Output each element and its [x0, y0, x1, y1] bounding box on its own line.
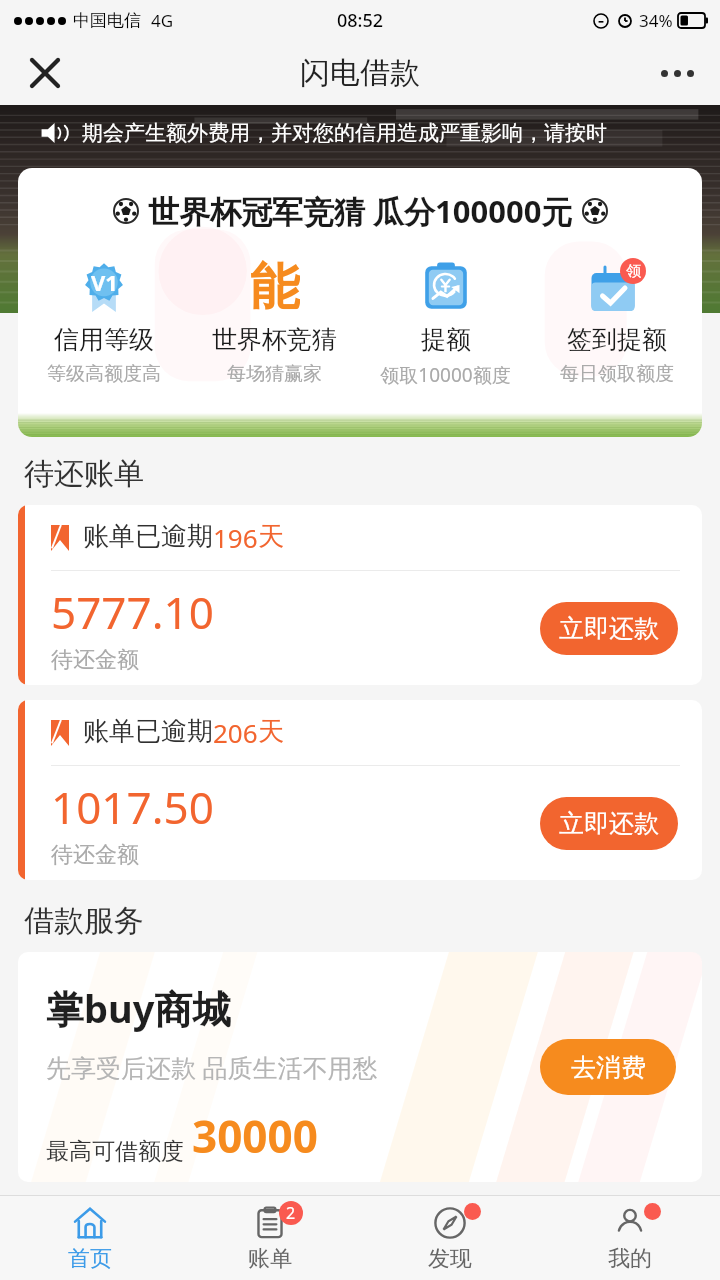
staticText: 每日领取额度 — [560, 362, 674, 386]
staticText: 先享受后还款 品质生活不用愁 — [46, 1050, 378, 1084]
staticText: 待还账单 — [24, 455, 144, 493]
staticText: 待还金额 — [51, 841, 139, 869]
button[interactable]: 去消费 — [540, 1039, 676, 1095]
staticText: 账单 — [248, 1245, 292, 1273]
button[interactable]: 2 — [180, 1196, 360, 1280]
button[interactable]: 提额 — [360, 254, 531, 390]
staticText: 期会产生额外费用，并对您的信用造成严重影响，请按时 — [82, 120, 607, 146]
staticText: 世界杯竞猜 — [212, 324, 337, 355]
staticText: 196 — [213, 520, 258, 555]
button[interactable]: 领 — [531, 254, 702, 388]
staticText: 账单已逾期 — [83, 715, 213, 748]
staticText: 掌buy商城 — [46, 982, 231, 1034]
staticText: 首页 — [68, 1245, 112, 1273]
staticText: 我的 — [608, 1245, 652, 1273]
button[interactable]: 发现 — [360, 1196, 540, 1280]
button[interactable]: 首页 — [0, 1196, 180, 1280]
button[interactable]: 账单已逾期 — [18, 505, 702, 685]
staticText: 天 — [258, 520, 284, 553]
staticText: 提额 — [421, 324, 471, 355]
button[interactable]: 掌buy商城 — [18, 952, 702, 1182]
staticText: V1 — [91, 267, 118, 297]
staticText: 4G — [151, 9, 174, 32]
staticText: 发现 — [428, 1245, 472, 1273]
button[interactable]: 我的 — [540, 1196, 720, 1280]
staticText: 能 — [250, 256, 300, 318]
staticText: 每场猜赢家 — [227, 362, 322, 386]
staticText: 最高可借额度 — [46, 1137, 184, 1166]
button[interactable]: More options — [652, 48, 702, 98]
staticText: 世界杯冠军竞猜 瓜分100000元 — [148, 190, 573, 232]
staticText: 信用等级 — [54, 324, 154, 355]
button[interactable]: 立即还款 — [540, 602, 678, 655]
staticText: 闪电借款 — [300, 54, 420, 92]
staticText: 立即还款 — [559, 613, 659, 644]
staticText: 立即还款 — [559, 808, 659, 839]
staticText: 待还金额 — [51, 646, 139, 674]
staticText: 2 — [286, 1202, 296, 1224]
staticText: 账单已逾期 — [83, 520, 213, 553]
staticText: 中国电信 — [73, 10, 141, 31]
staticText: 等级高额度高 — [47, 362, 161, 386]
button[interactable]: Close — [22, 50, 68, 96]
staticText: 30000 — [192, 1106, 318, 1166]
staticText: 5777.10 — [51, 582, 214, 642]
button[interactable]: 账单已逾期 — [18, 700, 702, 880]
staticText: 08:52 — [337, 8, 384, 33]
button[interactable]: 世界杯冠军竞猜 瓜分100000元 — [18, 168, 702, 437]
staticText: 去消费 — [571, 1052, 646, 1083]
staticText: 34% — [639, 9, 673, 32]
button[interactable]: 立即还款 — [540, 797, 678, 850]
staticText: 签到提额 — [567, 324, 667, 355]
staticText: 领取10000额度 — [380, 362, 511, 388]
button[interactable]: 能 — [189, 254, 360, 388]
staticText: 1017.50 — [51, 777, 214, 837]
button[interactable]: V1 — [18, 254, 189, 388]
staticText: 领 — [626, 262, 641, 281]
staticText: 206 — [213, 715, 258, 750]
staticText: 天 — [258, 715, 284, 748]
staticText: 借款服务 — [24, 902, 144, 940]
